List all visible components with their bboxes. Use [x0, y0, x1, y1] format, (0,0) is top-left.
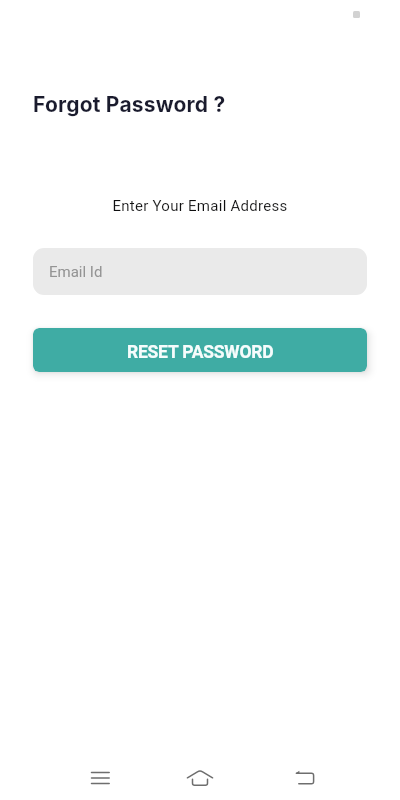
staticText: Email Id: [49, 263, 103, 281]
button[interactable]: RESET PASSWORD: [33, 328, 367, 372]
button[interactable]: Home: [176, 754, 224, 800]
staticText: Forgot Password ?: [33, 92, 226, 117]
button[interactable]: Email Id: [33, 248, 367, 295]
button[interactable]: Back: [281, 754, 329, 800]
button[interactable]: Recent apps: [76, 754, 124, 800]
staticText: RESET PASSWORD: [127, 342, 274, 363]
staticText: Enter Your Email Address: [112, 197, 288, 215]
